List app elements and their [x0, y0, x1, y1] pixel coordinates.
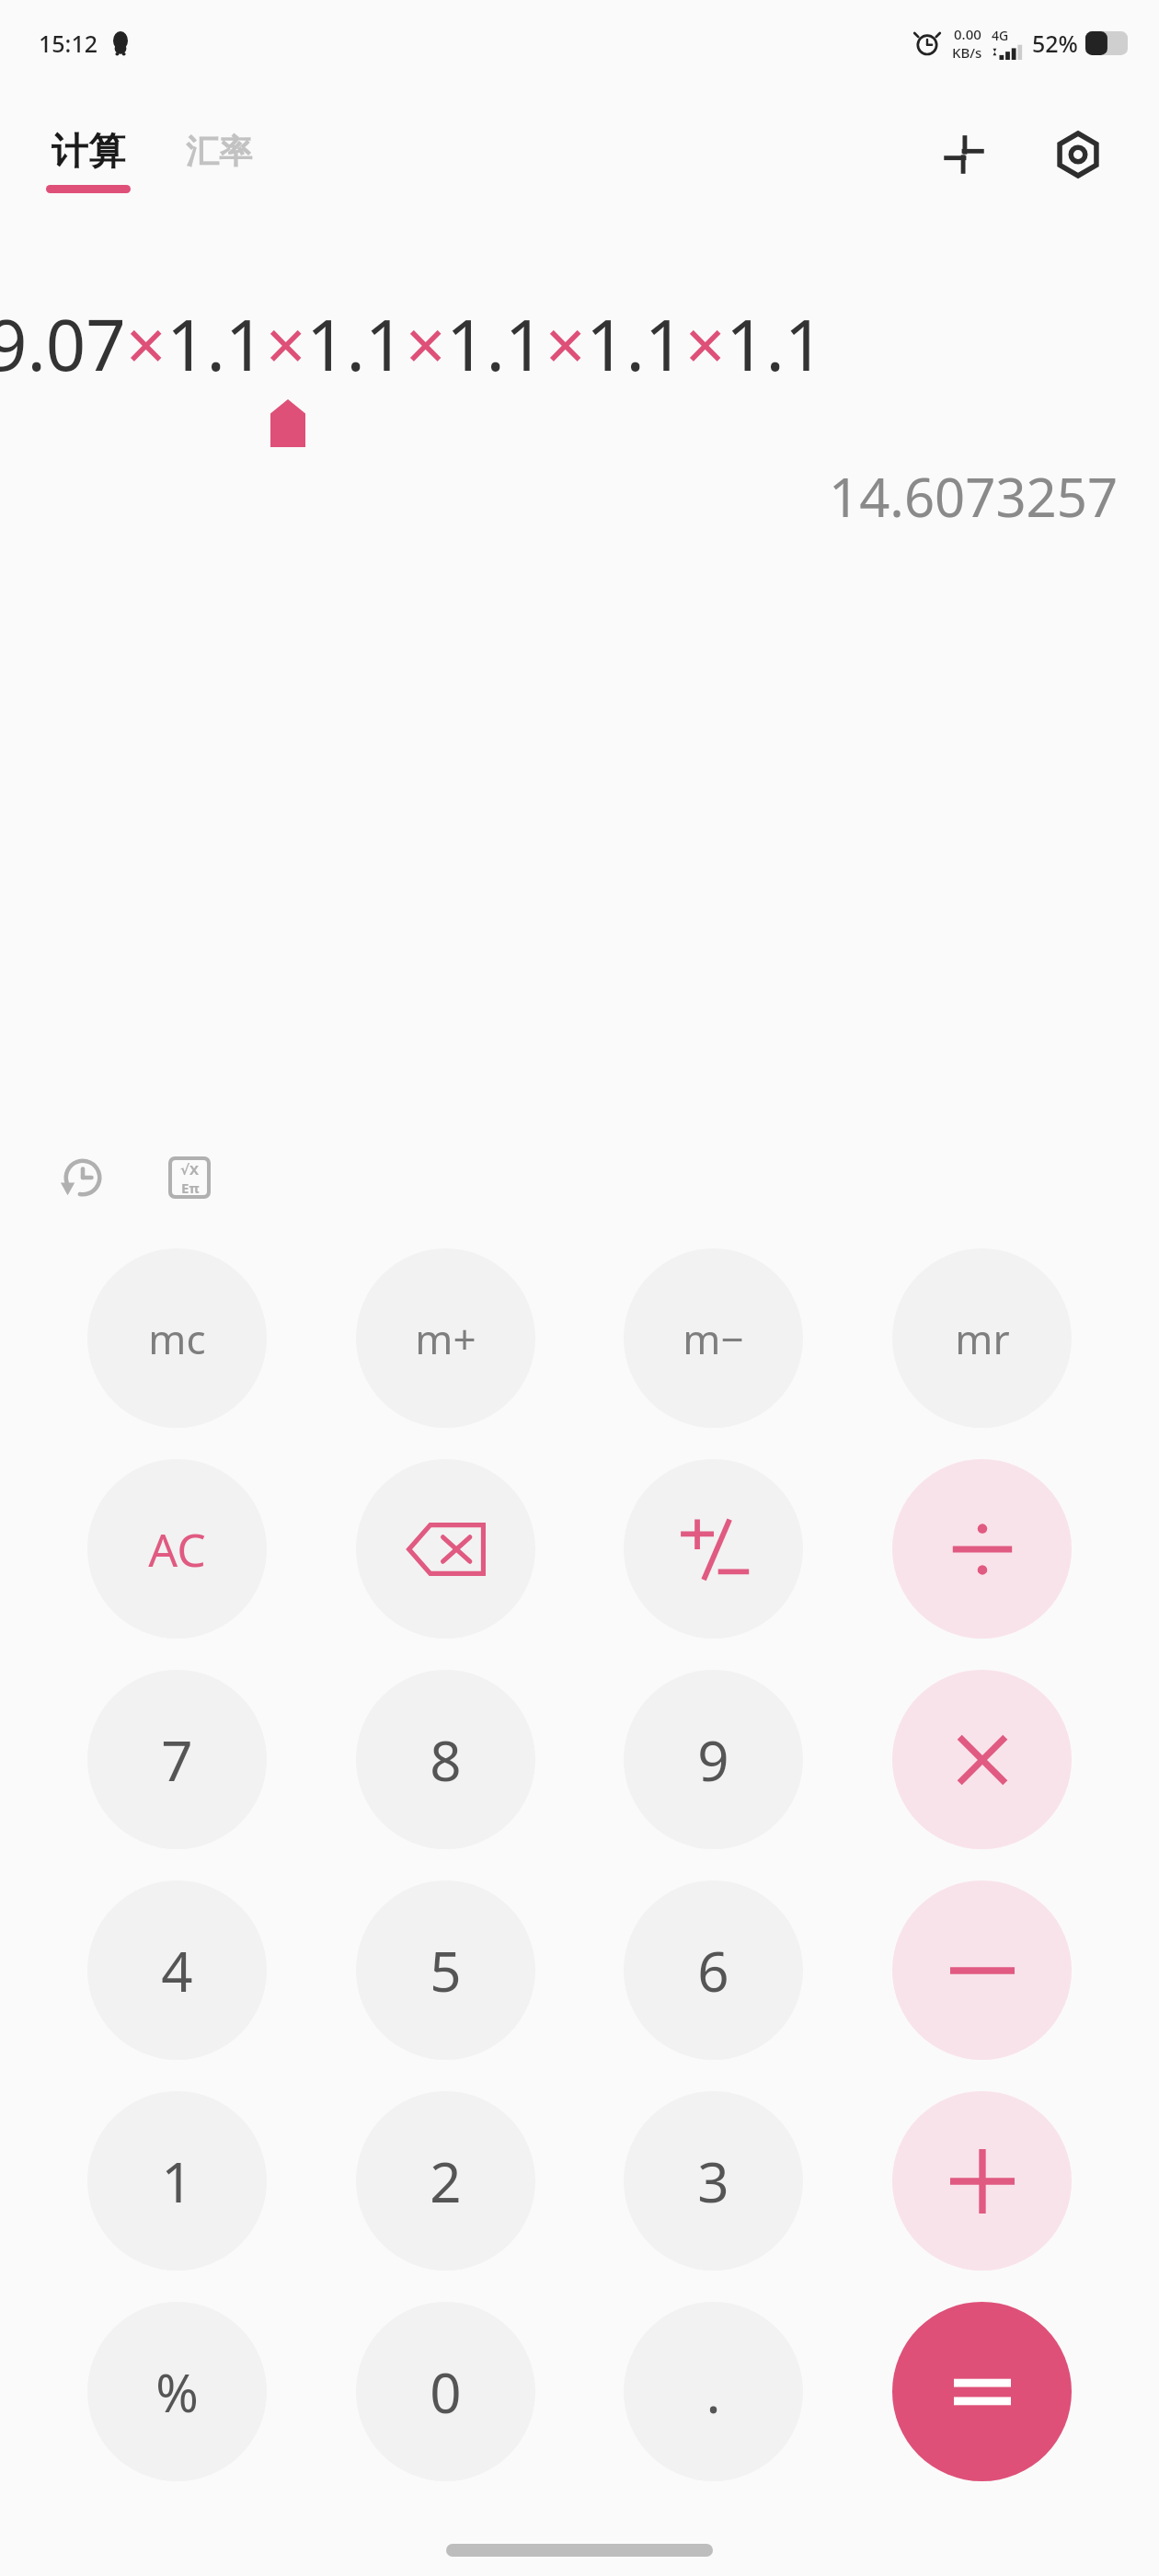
staticText: 2 [430, 2144, 462, 2219]
staticText: % [155, 2357, 199, 2427]
staticText: √X [180, 1160, 200, 1179]
button[interactable]: Multiply [892, 1670, 1072, 1849]
staticText: × [126, 296, 166, 392]
button[interactable]: . [624, 2302, 803, 2481]
button[interactable]: m+ [356, 1248, 535, 1428]
staticText: 0.00 [954, 25, 981, 43]
staticText: mc [148, 1311, 206, 1366]
button[interactable]: 计算 [40, 122, 136, 199]
button[interactable]: 5 [356, 1880, 535, 2060]
staticText: 9 [697, 1722, 729, 1798]
button[interactable]: 汇率 [180, 140, 258, 181]
staticText: 1.1 [446, 296, 545, 392]
staticText: × [545, 296, 586, 392]
staticText: 计算 [52, 128, 125, 174]
staticText: 0 [430, 2354, 462, 2430]
staticText: 4 [161, 1933, 193, 2008]
staticText: AC [148, 1518, 206, 1581]
staticText: 7 [161, 1722, 193, 1798]
staticText: 汇率 [186, 131, 252, 172]
button[interactable]: Settings [1038, 114, 1119, 195]
staticText: 6 [697, 1933, 729, 2008]
staticText: mr [955, 1311, 1010, 1366]
button[interactable]: Equals [892, 2302, 1072, 2481]
button[interactable]: Scientific mode [155, 1143, 224, 1213]
button[interactable]: % [87, 2302, 267, 2481]
staticText: 14.6073257 [829, 460, 1119, 533]
button[interactable]: 9 [624, 1670, 803, 1849]
button[interactable]: 6 [624, 1880, 803, 2060]
staticText: m− [683, 1311, 744, 1366]
staticText: 3 [697, 2144, 729, 2219]
staticText: × [266, 296, 306, 392]
button[interactable]: 4 [87, 1880, 267, 2060]
staticText: 8 [430, 1722, 462, 1798]
staticText: 1.1 [166, 296, 266, 392]
button[interactable]: Minus [892, 1880, 1072, 2060]
staticText: 4G [992, 27, 1009, 44]
staticText: 1.1 [586, 296, 685, 392]
button[interactable]: Plus minus [624, 1459, 803, 1639]
staticText: 15:12 [39, 28, 98, 59]
staticText: 1.1 [306, 296, 406, 392]
button[interactable]: 2 [356, 2091, 535, 2271]
button[interactable]: 0 [356, 2302, 535, 2481]
staticText: 9.07 [0, 296, 126, 392]
staticText: 52% [1032, 28, 1078, 59]
staticText: m+ [415, 1311, 476, 1366]
staticText: KB/s [952, 43, 982, 62]
button[interactable]: mr [892, 1248, 1072, 1428]
button[interactable]: Floating window [924, 114, 1004, 195]
button[interactable]: mc [87, 1248, 267, 1428]
button[interactable]: 3 [624, 2091, 803, 2271]
staticText: × [406, 296, 446, 392]
button[interactable]: m− [624, 1248, 803, 1428]
button[interactable]: 1 [87, 2091, 267, 2271]
button[interactable]: 8 [356, 1670, 535, 1849]
button[interactable]: Divide [892, 1459, 1072, 1639]
staticText: Eπ [181, 1179, 200, 1195]
button[interactable]: 7 [87, 1670, 267, 1849]
button[interactable]: Delete [356, 1459, 535, 1639]
staticText: × [685, 296, 726, 392]
staticText: 1 [161, 2144, 193, 2219]
staticText: 5 [430, 1933, 462, 2008]
staticText: . [706, 2354, 721, 2430]
staticText: 1.1 [726, 296, 825, 392]
button[interactable]: AC [87, 1459, 267, 1639]
button[interactable]: History [48, 1143, 118, 1213]
button[interactable]: Plus [892, 2091, 1072, 2271]
